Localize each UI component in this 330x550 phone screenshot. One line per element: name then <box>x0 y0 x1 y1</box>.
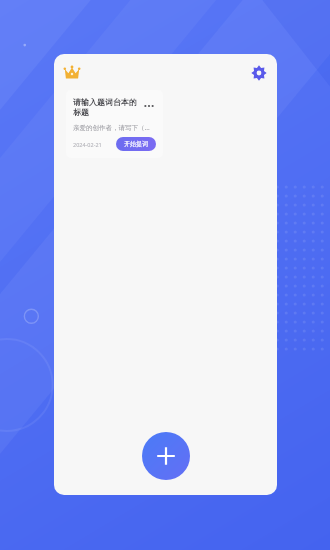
button[interactable]: Settings <box>251 65 267 81</box>
button[interactable]: Add <box>142 432 190 480</box>
staticText: 开始提词 <box>124 140 148 148</box>
button[interactable]: 开始提词 <box>116 137 156 151</box>
staticText: 请输入题词台本的标题 <box>73 97 139 118</box>
button[interactable]: 请输入题词台本的标题 <box>66 90 163 158</box>
button[interactable]: VIP <box>63 64 81 82</box>
button[interactable]: More options <box>142 102 156 110</box>
staticText: 亲爱的创作者，请写下（... <box>73 123 150 132</box>
staticText: 2024-02-21 <box>73 141 102 148</box>
